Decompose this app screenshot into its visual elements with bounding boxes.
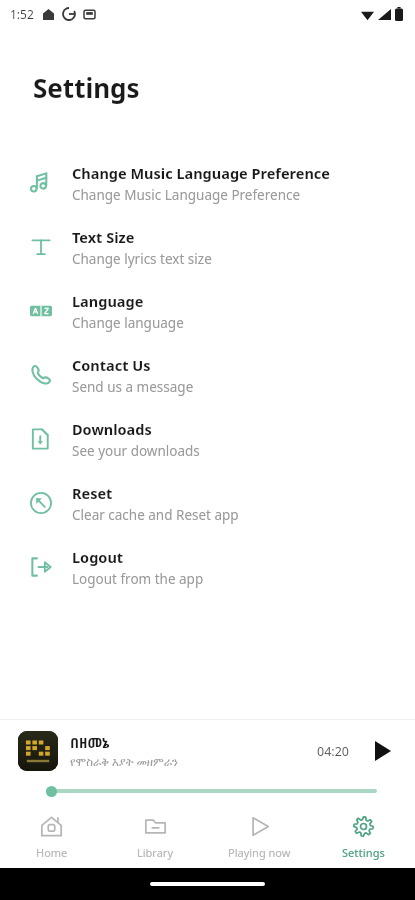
staticText: Change Music Language Preference	[72, 163, 331, 183]
button[interactable]: Text Size	[0, 215, 415, 279]
button[interactable]: Contact Us	[0, 343, 415, 407]
staticText: Send us a message	[72, 378, 194, 396]
staticText: Playing now	[228, 845, 291, 860]
staticText: See your downloads	[72, 442, 200, 460]
button[interactable]: በዘመኔ	[0, 720, 415, 782]
staticText: Clear cache and Reset app	[72, 506, 239, 524]
staticText: Library	[137, 845, 174, 860]
button[interactable]: Settings	[311, 806, 415, 868]
button[interactable]: Playing now	[207, 806, 311, 868]
button[interactable]: Library	[103, 806, 207, 868]
staticText: Logout from the app	[72, 570, 204, 588]
staticText: የሞስራቅ እያት መዘምራን	[70, 754, 179, 770]
staticText: Settings	[33, 70, 140, 105]
staticText: Text Size	[72, 227, 135, 247]
button[interactable]: Play	[367, 736, 397, 766]
staticText: 1:52	[10, 6, 34, 22]
staticText: 04:20	[317, 743, 349, 760]
button[interactable]: Logout	[0, 535, 415, 599]
staticText: Home	[36, 845, 68, 860]
button[interactable]: Language	[0, 279, 415, 343]
staticText: Contact Us	[72, 355, 151, 375]
staticText: Downloads	[72, 419, 152, 439]
staticText: Logout	[72, 547, 124, 567]
staticText: በዘመኔ	[70, 733, 110, 752]
staticText: Change language	[72, 314, 184, 332]
staticText: Language	[72, 291, 144, 311]
button[interactable]: Reset	[0, 471, 415, 535]
staticText: Change Music Language Preference	[72, 186, 301, 204]
staticText: Change lyrics text size	[72, 250, 212, 268]
staticText: Settings	[342, 845, 385, 860]
button[interactable]: Change Music Language Preference	[0, 151, 415, 215]
staticText: Reset	[72, 483, 113, 503]
button[interactable]: Downloads	[0, 407, 415, 471]
button[interactable]: Home	[0, 806, 103, 868]
